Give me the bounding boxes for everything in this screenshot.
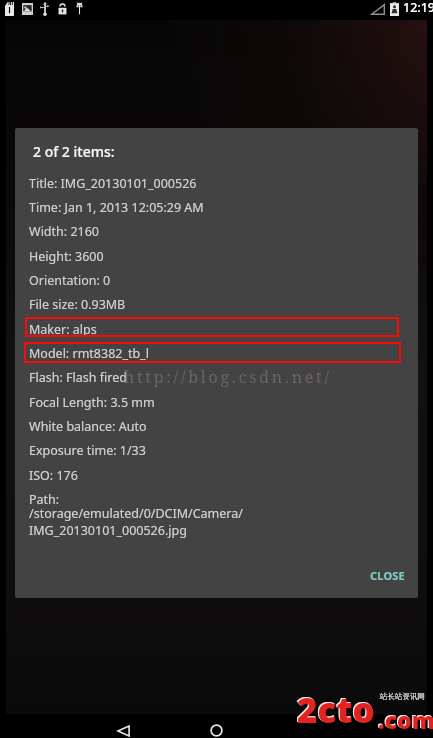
staticText: IMG_20130101_000526.jpg: [29, 522, 187, 539]
staticText: .com: [377, 703, 433, 734]
staticText: CLOSE: [370, 568, 405, 583]
button[interactable]: Home: [168, 714, 264, 738]
button[interactable]: Recents: [264, 714, 360, 738]
staticText: Exposure time: 1/33: [29, 442, 146, 459]
staticText: 2cto: [296, 685, 374, 733]
staticText: Title: IMG_20130101_000526: [29, 175, 197, 192]
button[interactable]: Back: [75, 714, 171, 738]
staticText: .com: [378, 704, 433, 735]
staticText: 2cto: [297, 686, 375, 734]
staticText: 12:19: [403, 0, 433, 16]
staticText: White balance: Auto: [29, 418, 147, 435]
staticText: Width: 2160: [29, 223, 99, 240]
staticText: /storage/emulated/0/DCIM/Camera/: [29, 505, 243, 522]
button[interactable]: CLOSE: [354, 558, 418, 593]
staticText: http://blog.csdn.net/: [124, 366, 332, 388]
staticText: Orientation: 0: [29, 272, 111, 289]
staticText: File size: 0.93MB: [29, 296, 126, 313]
staticText: Time: Jan 1, 2013 12:05:29 AM: [29, 199, 204, 216]
staticText: Model: rmt8382_tb_l: [29, 345, 149, 362]
staticText: Path:: [29, 491, 60, 508]
staticText: ISO: 176: [29, 467, 78, 484]
staticText: Height: 3600: [29, 248, 104, 265]
staticText: Focal Length: 3.5 mm: [29, 394, 155, 411]
staticText: 站长站资讯网: [380, 692, 425, 701]
staticText: Maker: alps: [29, 321, 97, 338]
staticText: 2 of 2 items:: [33, 142, 115, 161]
staticText: Flash: Flash fired: [29, 369, 127, 386]
